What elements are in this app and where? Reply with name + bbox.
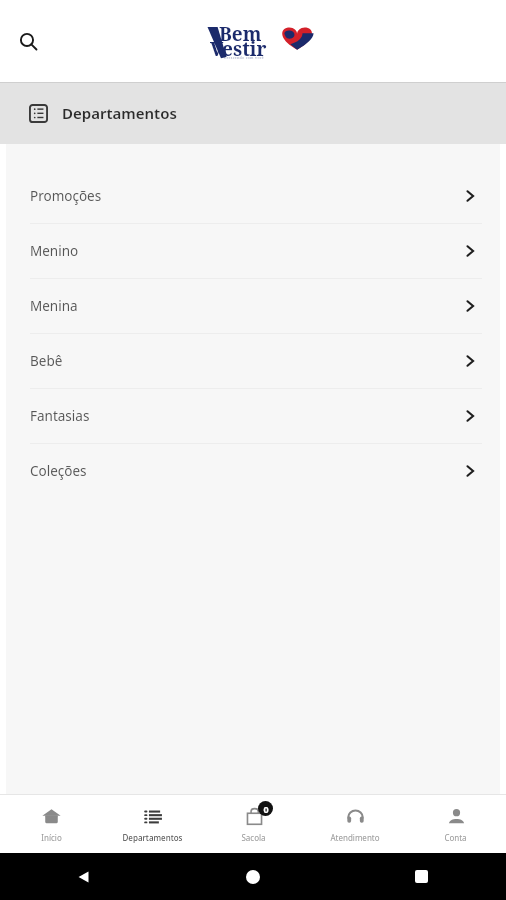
staticText: Crescendo com você <box>224 55 265 60</box>
staticText: Promoções <box>30 187 102 205</box>
staticText: Coleções <box>30 462 87 480</box>
button[interactable]: Conta <box>405 794 506 853</box>
button[interactable]: Menina <box>6 279 500 333</box>
button[interactable]: Atendimento <box>304 794 405 853</box>
staticText: Menino <box>30 242 79 260</box>
staticText: Início <box>41 832 62 843</box>
staticText: 0 <box>263 803 269 815</box>
button[interactable]: Menino <box>6 224 500 278</box>
staticText: Menina <box>30 297 78 315</box>
staticText: Vestir <box>210 36 267 62</box>
button[interactable]: Promoções <box>6 169 500 223</box>
button[interactable]: Bem <box>196 14 311 70</box>
button[interactable]: 0 <box>203 794 304 853</box>
staticText: Departamentos <box>122 832 183 843</box>
button[interactable]: Departamentos <box>102 794 203 853</box>
button[interactable]: Search <box>10 23 46 59</box>
staticText: Bem <box>219 21 262 47</box>
staticText: Fantasias <box>30 407 90 425</box>
staticText: Conta <box>444 832 467 843</box>
button[interactable]: Início <box>0 794 102 853</box>
staticText: Sacola <box>241 832 266 843</box>
staticText: Departamentos <box>62 103 177 123</box>
button[interactable]: Fantasias <box>6 389 500 443</box>
staticText: Atendimento <box>330 832 380 843</box>
button[interactable]: Bebê <box>6 334 500 388</box>
button[interactable]: Coleções <box>6 444 500 498</box>
staticText: Bebê <box>30 352 63 370</box>
